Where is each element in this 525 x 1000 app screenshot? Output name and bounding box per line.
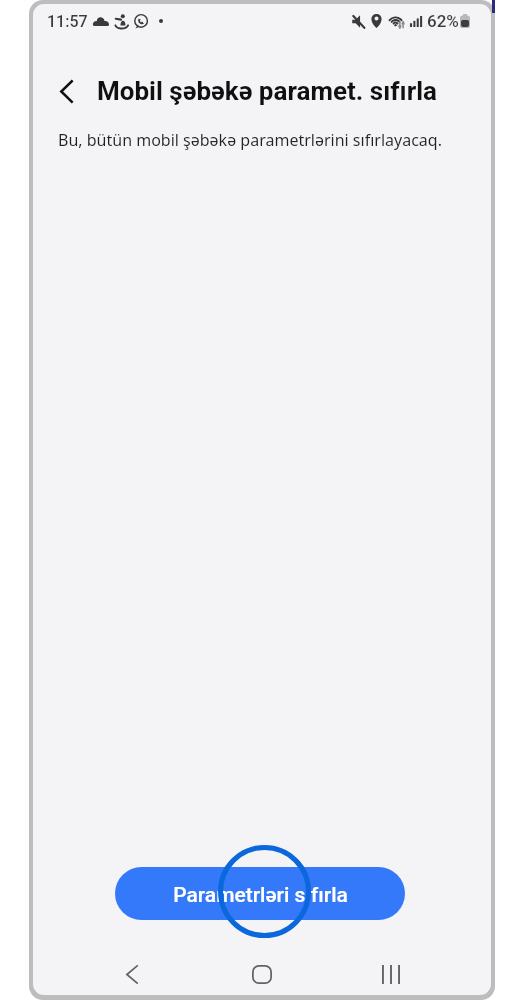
button[interactable]: Back <box>42 67 90 115</box>
button[interactable]: Parametrləri sıfırla <box>115 867 405 920</box>
button[interactable]: Home <box>236 951 288 997</box>
button[interactable]: Recent apps <box>365 951 417 997</box>
button[interactable]: Back <box>106 951 158 997</box>
staticText: 11:57 <box>47 12 88 31</box>
staticText: Bu, bütün mobil şəbəkə parametrlərini sı… <box>58 129 442 151</box>
staticText: Mobil şəbəkə paramet. sıfırla <box>97 76 437 106</box>
staticText: 62% <box>427 11 459 31</box>
staticText: Parametrləri sıfırla <box>173 883 348 908</box>
